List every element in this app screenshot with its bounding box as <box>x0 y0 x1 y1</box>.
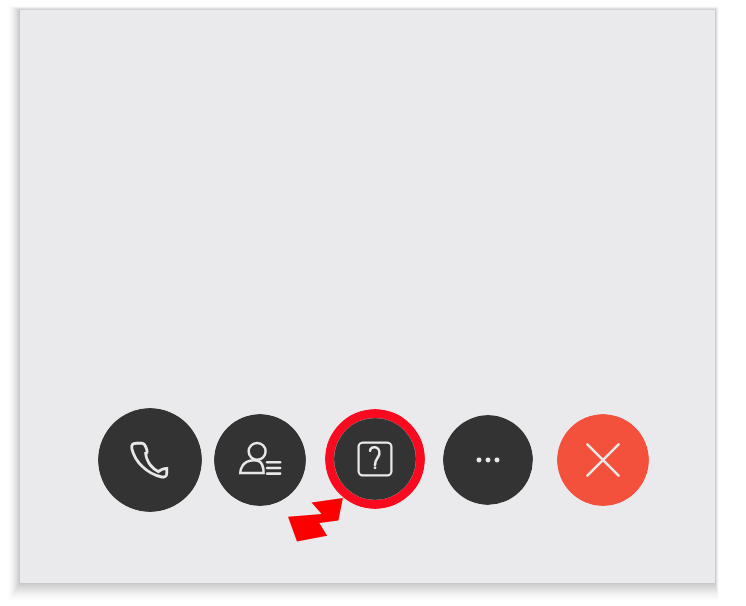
button[interactable]: More options <box>443 415 533 505</box>
button[interactable]: Help <box>325 409 425 509</box>
button[interactable]: End call <box>557 414 649 506</box>
button[interactable]: Contact details <box>214 414 306 506</box>
button[interactable]: Call <box>98 408 202 512</box>
